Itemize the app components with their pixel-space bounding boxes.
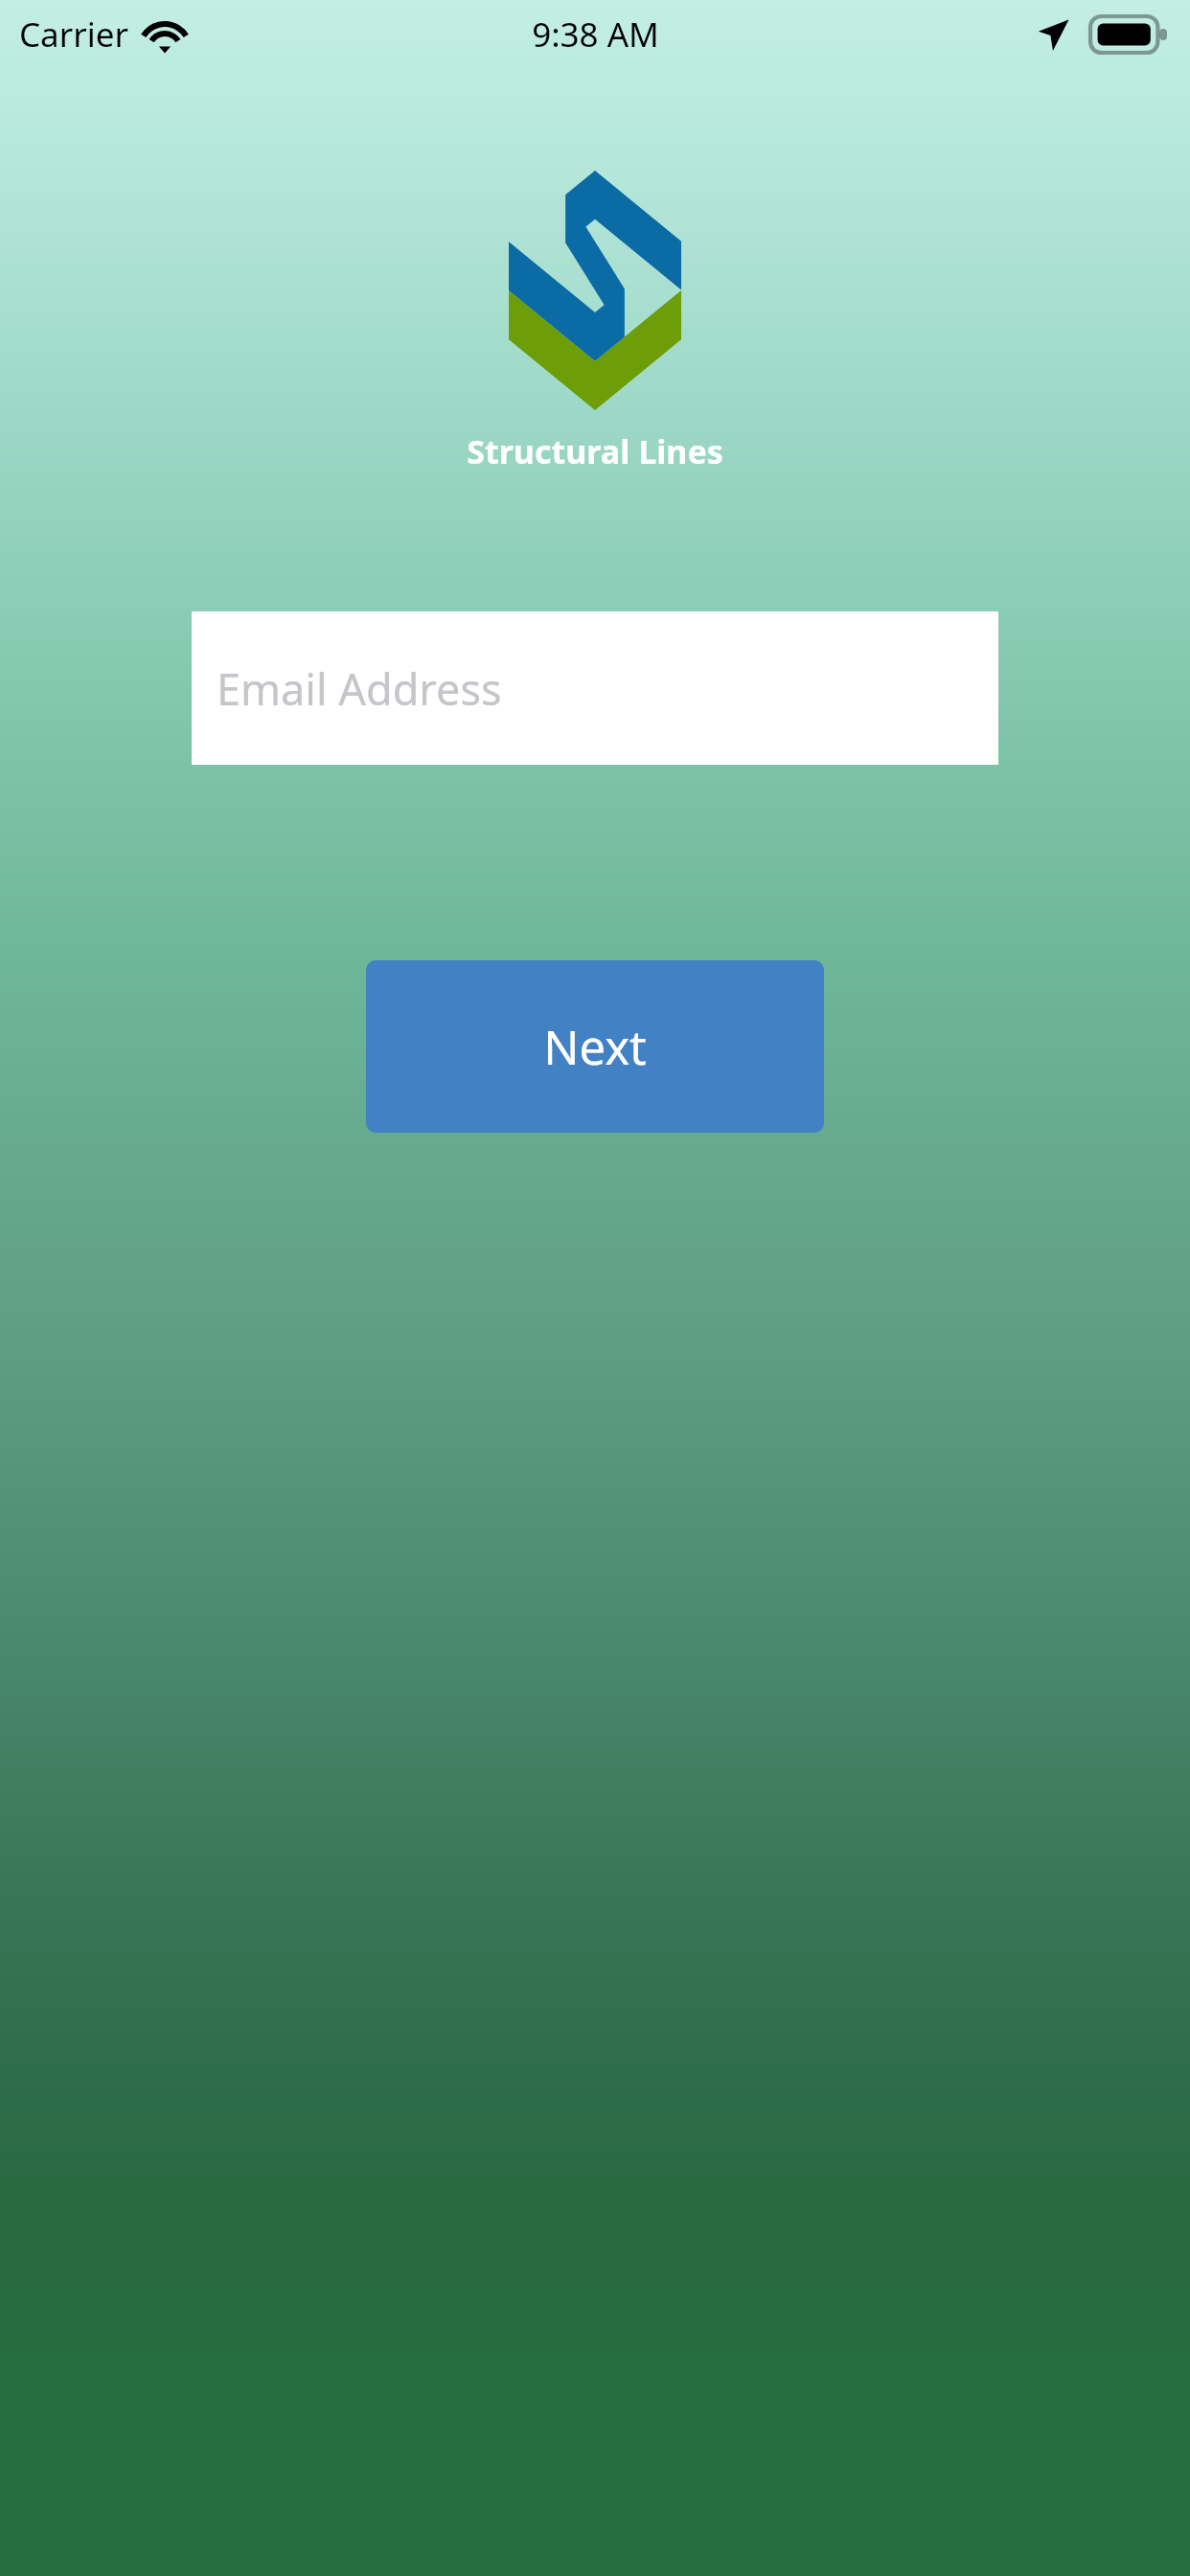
other: Structural Lines logo <box>509 171 681 410</box>
staticText: Email Address <box>217 659 502 718</box>
staticText: Structural Lines <box>467 429 723 473</box>
staticText: 9:38 AM <box>532 11 659 57</box>
other: Location active <box>1037 17 1071 52</box>
staticText: Next <box>543 1015 647 1079</box>
button[interactable]: Next <box>366 960 824 1133</box>
other: Battery full <box>1090 16 1167 53</box>
staticText: Carrier <box>19 11 128 57</box>
button[interactable]: Email Address <box>192 611 998 765</box>
